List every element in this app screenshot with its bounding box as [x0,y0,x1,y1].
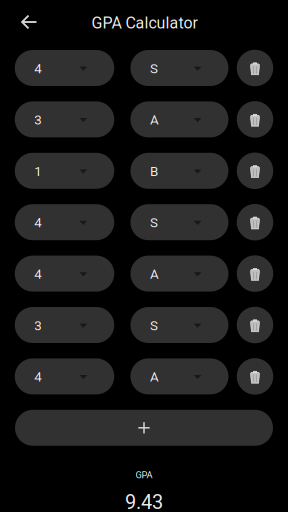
button[interactable]: 1 [15,153,114,189]
staticText: GPA [135,469,152,480]
button[interactable]: 3 [15,307,114,343]
staticText: A [150,112,159,128]
staticText: 9.43 [125,490,163,512]
button[interactable]: Delete course [237,153,273,189]
staticText: 3 [34,318,41,333]
button[interactable]: S [130,307,228,343]
staticText: B [150,164,158,179]
staticText: 4 [34,215,41,231]
staticText: S [150,61,158,76]
staticText: 4 [34,61,41,76]
staticText: A [150,369,159,385]
button[interactable]: Delete course [237,358,273,395]
button[interactable]: 3 [15,101,114,137]
button[interactable]: Add course [15,410,273,446]
button[interactable]: Delete course [237,101,273,138]
staticText: S [150,215,158,231]
staticText: 3 [34,112,41,128]
button[interactable]: 4 [15,204,114,240]
button[interactable]: Delete course [237,307,273,343]
button[interactable]: Back [0,0,44,44]
button[interactable]: Delete course [237,255,273,292]
button[interactable]: S [130,50,228,86]
staticText: GPA Calculator [92,14,198,32]
button[interactable]: Delete course [237,50,273,86]
staticText: 4 [34,266,41,282]
button[interactable]: 4 [15,256,114,292]
button[interactable]: B [130,153,228,189]
staticText: A [150,266,159,282]
button[interactable]: Delete course [237,204,273,240]
staticText: 1 [34,164,41,179]
button[interactable]: A [130,101,228,137]
button[interactable]: 4 [15,50,114,86]
button[interactable]: S [130,204,228,240]
button[interactable]: A [130,256,228,292]
button[interactable]: 4 [15,358,114,394]
staticText: S [150,318,158,333]
staticText: 4 [34,369,41,385]
button[interactable]: A [130,358,228,394]
